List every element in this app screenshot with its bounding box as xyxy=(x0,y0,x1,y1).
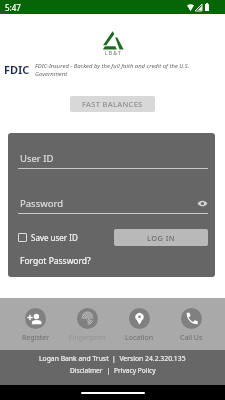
staticText: LB&T xyxy=(105,50,122,57)
staticText: 5:47 xyxy=(5,2,21,13)
button[interactable]: FAST BALANCES xyxy=(70,96,155,112)
staticText: FDIC xyxy=(4,62,30,77)
staticText: Logan Bank and Trust | Version 24.2.320.… xyxy=(39,354,186,363)
button[interactable]: Fingerprint xyxy=(61,298,113,350)
button[interactable]: Show password xyxy=(197,198,208,209)
staticText: User ID xyxy=(20,152,54,165)
staticText: FDIC-Insured - Backed by the full faith … xyxy=(35,62,211,77)
button[interactable]: Location xyxy=(113,298,165,350)
button[interactable]: Forgot Password? xyxy=(20,255,91,267)
staticText: FAST BALANCES xyxy=(82,99,143,109)
staticText: Location xyxy=(125,333,154,343)
staticText: Call Us xyxy=(180,333,203,343)
button[interactable]: Register xyxy=(10,298,61,350)
button[interactable]: Privacy Policy xyxy=(114,366,156,375)
staticText: | xyxy=(103,366,114,375)
button[interactable]: Save user ID xyxy=(18,232,78,243)
staticText: LOG IN xyxy=(147,233,176,243)
button[interactable]: Call Us xyxy=(165,298,217,350)
staticText: Register xyxy=(22,333,50,343)
button[interactable]: Disclaimer xyxy=(70,366,103,375)
button[interactable]: LOG IN xyxy=(114,229,208,246)
staticText: Fingerprint xyxy=(69,333,106,343)
staticText: Save user ID xyxy=(31,232,78,243)
staticText: Password xyxy=(20,197,197,210)
